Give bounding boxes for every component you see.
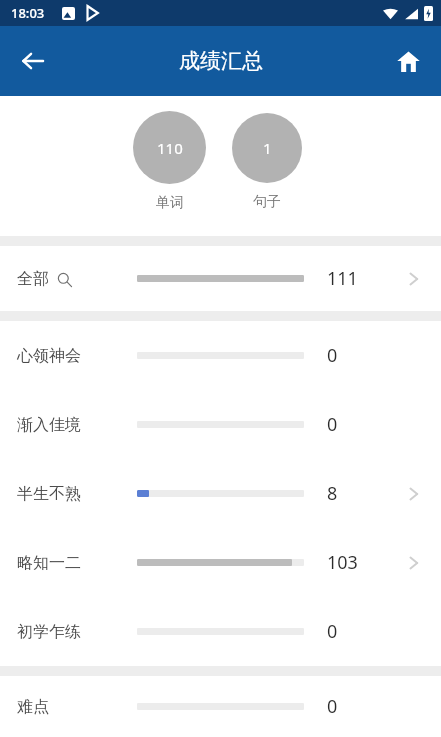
button[interactable]: 1 (232, 113, 302, 211)
staticText: 半生不熟 (17, 484, 81, 504)
staticText: 句子 (253, 193, 281, 211)
button[interactable]: 难点 (0, 676, 441, 737)
staticText: 110 (157, 138, 183, 158)
staticText: 难点 (17, 697, 49, 717)
staticText: 0 (327, 619, 338, 644)
button[interactable]: 初学乍练 (0, 597, 441, 666)
staticText: 略知一二 (17, 553, 81, 573)
staticText: 1 (263, 138, 272, 158)
button[interactable]: Home (387, 40, 429, 82)
staticText: 单词 (156, 194, 184, 212)
button[interactable]: 110 (133, 111, 206, 212)
button[interactable]: Back (12, 40, 54, 82)
staticText: 全部 (17, 269, 49, 289)
staticText: 0 (327, 343, 338, 368)
staticText: 18:03 (11, 4, 45, 22)
button[interactable]: 渐入佳境 (0, 390, 441, 459)
button[interactable]: 半生不熟 (0, 459, 441, 528)
staticText: 心领神会 (17, 346, 81, 366)
staticText: 103 (327, 550, 358, 575)
staticText: 成绩汇总 (179, 48, 263, 74)
staticText: 初学乍练 (17, 622, 81, 642)
staticText: 渐入佳境 (17, 415, 81, 435)
staticText: 8 (327, 481, 338, 506)
button[interactable]: 全部 (0, 246, 441, 311)
staticText: 111 (327, 266, 358, 291)
button[interactable]: 心领神会 (0, 321, 441, 390)
staticText: 0 (327, 412, 338, 437)
staticText: 0 (327, 694, 338, 719)
button[interactable]: 略知一二 (0, 528, 441, 597)
